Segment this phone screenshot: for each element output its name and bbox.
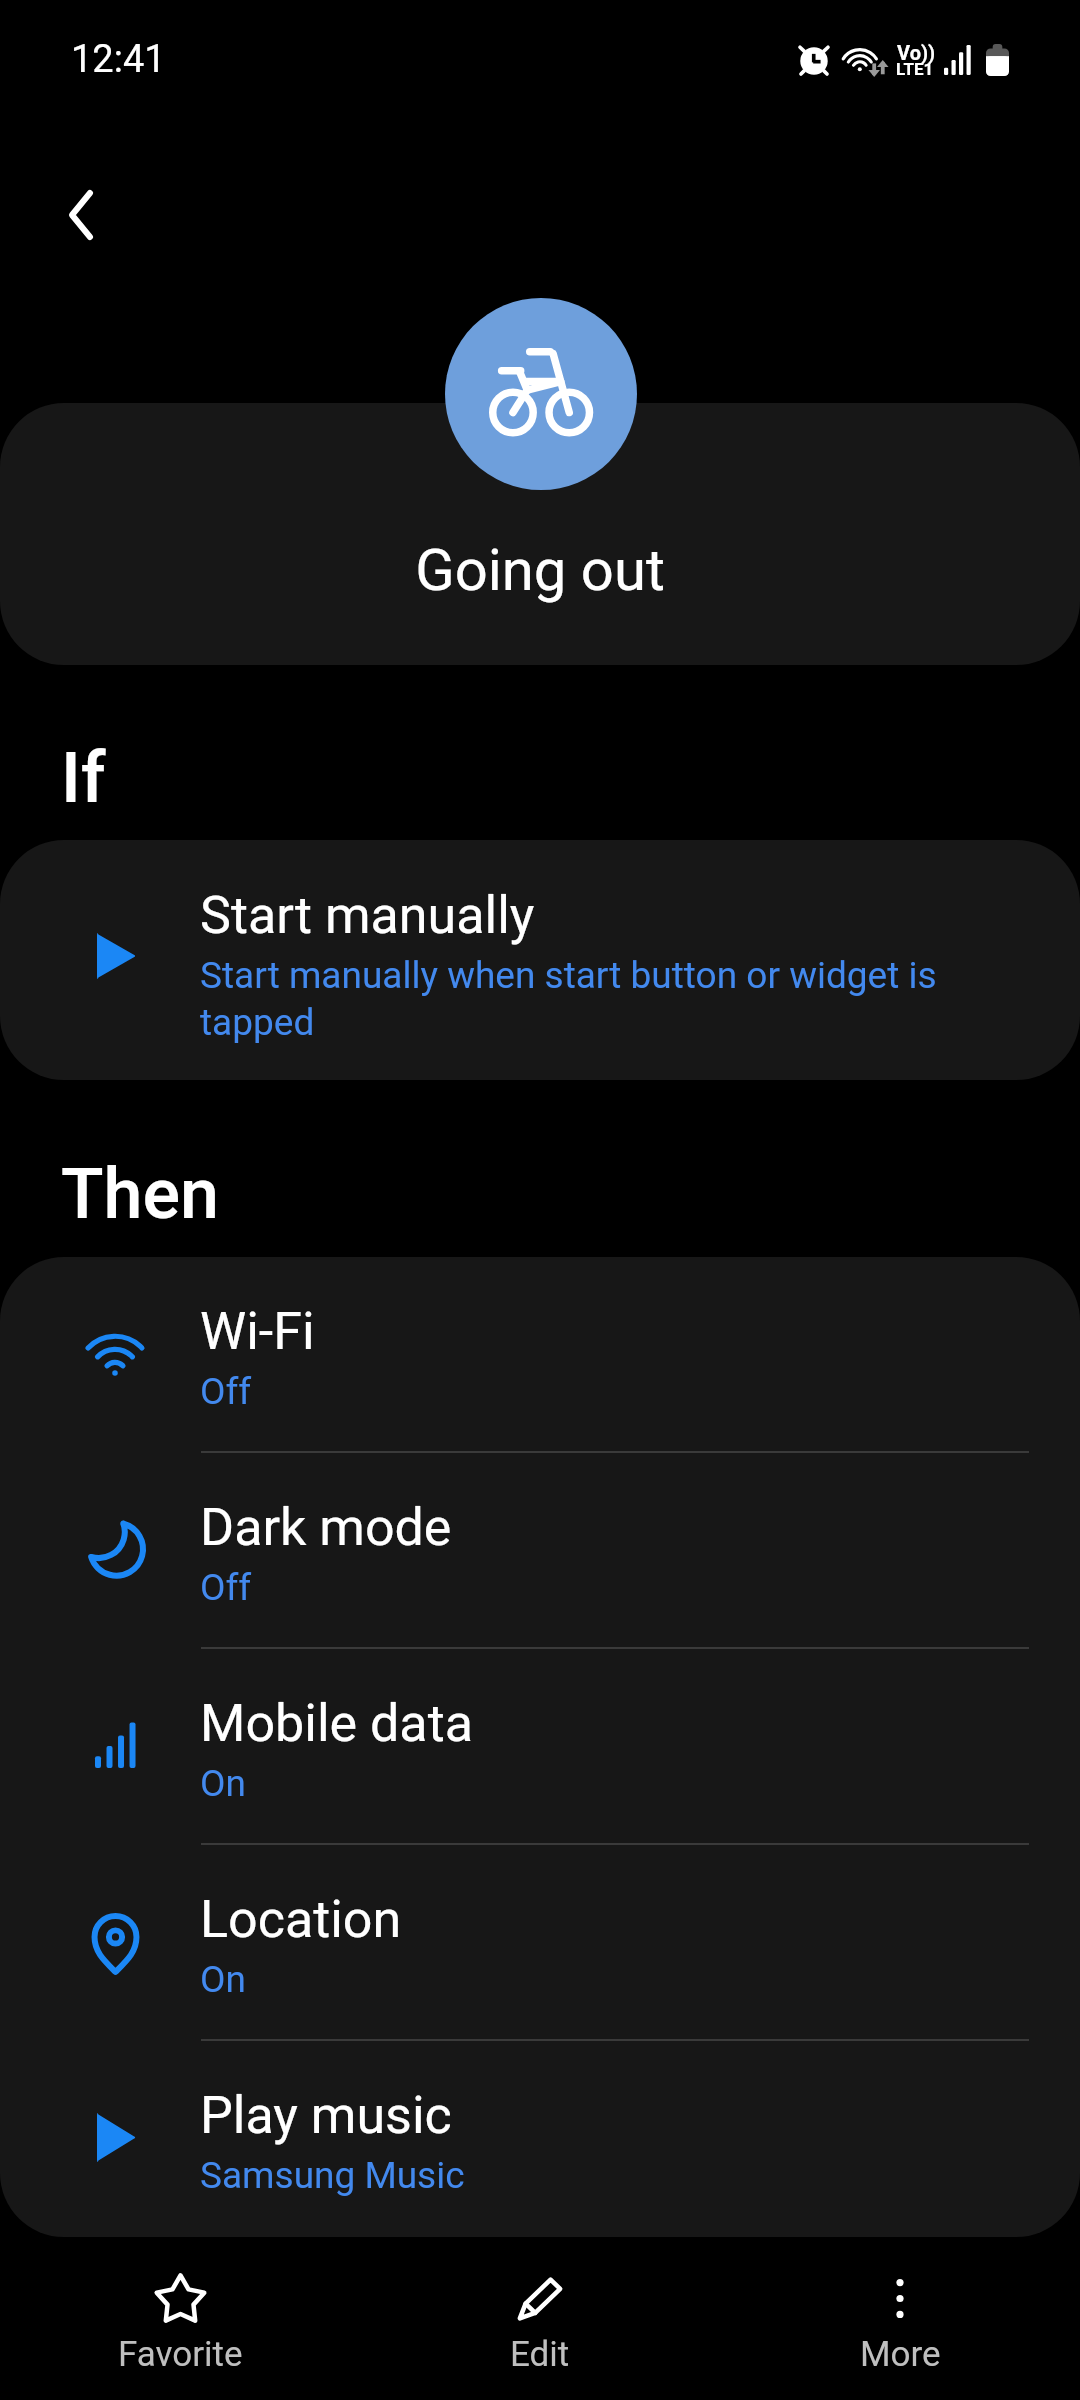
staticText: Favorite (118, 2334, 243, 2375)
staticText: Then (61, 1153, 219, 1235)
staticText: Wi-Fi (200, 1301, 315, 1362)
button[interactable]: Play music (0, 2041, 1080, 2237)
staticText: Off (200, 1566, 252, 1609)
staticText: On (200, 1762, 246, 1805)
staticText: Off (200, 1370, 252, 1413)
staticText: If (61, 737, 106, 819)
button[interactable]: Wi-Fi (0, 1257, 1080, 1453)
staticText: Location (200, 1889, 402, 1950)
staticText: Edit (510, 2334, 570, 2375)
button[interactable]: Start manually (0, 840, 1080, 1080)
staticText: LTE1 (896, 59, 934, 79)
button[interactable]: Mobile data (0, 1649, 1080, 1845)
staticText: 12:41 (71, 37, 166, 82)
staticText: On (200, 1958, 246, 2001)
staticText: Play music (200, 2085, 452, 2146)
staticText: Mobile data (200, 1693, 473, 1754)
staticText: Start manually (200, 885, 535, 946)
button[interactable]: Dark mode (0, 1453, 1080, 1649)
staticText: Going out (0, 536, 1080, 604)
button[interactable]: More (720, 2228, 1080, 2400)
staticText: Samsung Music (200, 2154, 465, 2197)
button[interactable]: Going out (0, 403, 1080, 665)
staticText: Dark mode (200, 1497, 452, 1558)
staticText: Start manually when start button or widg… (200, 954, 1030, 1044)
staticText: Vo)) (897, 41, 936, 64)
button[interactable]: Edit (360, 2228, 720, 2400)
button[interactable]: Navigate up (28, 172, 114, 258)
staticText: More (860, 2334, 941, 2375)
button[interactable]: Location (0, 1845, 1080, 2041)
button[interactable]: Favorite (0, 2228, 360, 2400)
